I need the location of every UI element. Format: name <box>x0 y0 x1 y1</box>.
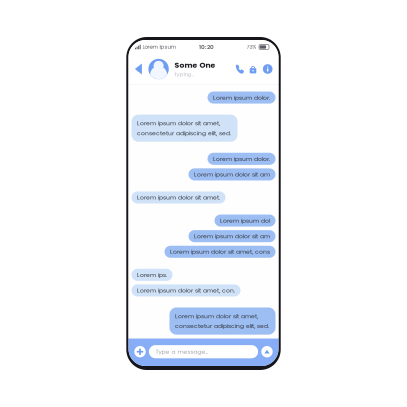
staticText: Lorem ipsum dol <box>220 217 270 224</box>
staticText: Lorem ips. <box>137 271 167 278</box>
button[interactable]: Call <box>232 54 246 83</box>
staticText: 10:20 <box>199 43 214 51</box>
staticText: Type a message... <box>155 347 208 356</box>
staticText: typing... <box>174 70 194 78</box>
button[interactable]: Send <box>261 346 273 357</box>
staticText: Lorem ipsum dolor. <box>213 94 270 101</box>
staticText: Some One <box>174 60 215 70</box>
staticText: Lorem ipsum dolor sit amet. <box>137 194 220 201</box>
staticText: 73% <box>246 43 256 51</box>
staticText: Lorem ipsum dolor sit am <box>194 233 270 240</box>
staticText: Lorem ipsum dolor sit am <box>194 171 270 178</box>
staticText: Lorem ipsum dolor sit amet, cons <box>170 248 270 255</box>
button[interactable]: Encryption <box>246 54 260 83</box>
button[interactable]: Attach <box>134 346 146 357</box>
staticText: Lorem ipsum dolor. <box>213 155 270 162</box>
button[interactable]: Some One <box>148 54 215 83</box>
staticText: Lorem ipsum dolor sit amet, consectetur … <box>137 120 231 137</box>
button[interactable]: Back <box>131 54 145 83</box>
staticText: Lorem Ipsum <box>142 43 175 51</box>
button[interactable]: Info <box>260 54 275 83</box>
staticText: Lorem ipsum dolor sit amet, consectetur … <box>175 313 269 329</box>
staticText: Lorem ipsum dolor sit amet, con. <box>137 287 235 294</box>
